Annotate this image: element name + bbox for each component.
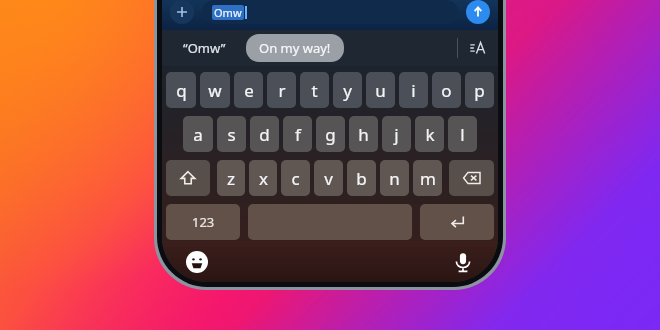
staticText: x xyxy=(259,167,268,190)
button[interactable]: 123 xyxy=(166,204,240,240)
button[interactable]: l xyxy=(448,116,477,152)
button[interactable]: Emoji xyxy=(184,249,210,274)
staticText: g xyxy=(325,123,336,146)
button[interactable]: s xyxy=(217,116,246,152)
staticText: v xyxy=(324,167,333,190)
staticText: y xyxy=(343,79,352,102)
button[interactable]: v xyxy=(314,160,343,196)
staticText: d xyxy=(259,123,270,146)
staticText: m xyxy=(420,167,436,190)
staticText: c xyxy=(291,167,300,190)
button[interactable]: Backspace xyxy=(449,160,494,196)
button[interactable]: t xyxy=(300,72,329,108)
button[interactable]: e xyxy=(234,72,263,108)
button[interactable]: n xyxy=(380,160,409,196)
button[interactable]: p xyxy=(465,72,494,108)
staticText: n xyxy=(389,167,400,190)
button[interactable]: m xyxy=(413,160,442,196)
button[interactable]: Text formatting xyxy=(458,30,498,66)
button[interactable]: “Omw” xyxy=(162,30,246,66)
button[interactable]: r xyxy=(267,72,296,108)
staticText: “Omw” xyxy=(183,39,226,57)
button[interactable]: y xyxy=(333,72,362,108)
button[interactable]: g xyxy=(316,116,345,152)
button[interactable]: i xyxy=(399,72,428,108)
staticText: h xyxy=(358,123,369,146)
button[interactable]: k xyxy=(415,116,444,152)
button[interactable]: Omw xyxy=(202,0,458,24)
button[interactable]: h xyxy=(349,116,378,152)
button[interactable]: On my way! xyxy=(246,34,344,62)
button[interactable]: w xyxy=(200,72,230,108)
staticText: k xyxy=(425,123,435,146)
button[interactable]: Add attachment xyxy=(170,0,194,24)
staticText: On my way! xyxy=(259,39,331,57)
button[interactable]: z xyxy=(217,160,245,196)
staticText: u xyxy=(375,79,386,102)
button[interactable]: q xyxy=(166,72,196,108)
button[interactable]: c xyxy=(281,160,310,196)
staticText: o xyxy=(441,79,452,102)
button[interactable]: Send xyxy=(466,0,490,24)
button[interactable]: a xyxy=(183,116,213,152)
button[interactable]: u xyxy=(366,72,395,108)
staticText: j xyxy=(394,123,399,146)
staticText: f xyxy=(295,123,301,146)
staticText: s xyxy=(227,123,236,146)
button[interactable]: Shift xyxy=(166,160,210,196)
staticText: 123 xyxy=(192,213,215,231)
staticText: b xyxy=(356,167,367,190)
button[interactable]: d xyxy=(250,116,279,152)
button[interactable]: o xyxy=(432,72,461,108)
button[interactable]: j xyxy=(382,116,411,152)
button[interactable]: Voice input xyxy=(450,249,476,274)
button[interactable]: x xyxy=(249,160,277,196)
staticText: l xyxy=(460,123,465,146)
button[interactable]: b xyxy=(347,160,376,196)
staticText: a xyxy=(193,123,203,146)
button[interactable]: f xyxy=(283,116,312,152)
staticText: e xyxy=(244,79,254,102)
staticText: p xyxy=(474,79,485,102)
staticText: Omw xyxy=(214,5,242,20)
staticText: z xyxy=(227,167,235,190)
staticText: r xyxy=(278,79,286,102)
staticText: w xyxy=(208,79,222,102)
staticText: i xyxy=(411,79,416,102)
staticText: q xyxy=(176,79,187,102)
staticText: t xyxy=(311,79,318,102)
button[interactable]: Return xyxy=(420,204,494,240)
